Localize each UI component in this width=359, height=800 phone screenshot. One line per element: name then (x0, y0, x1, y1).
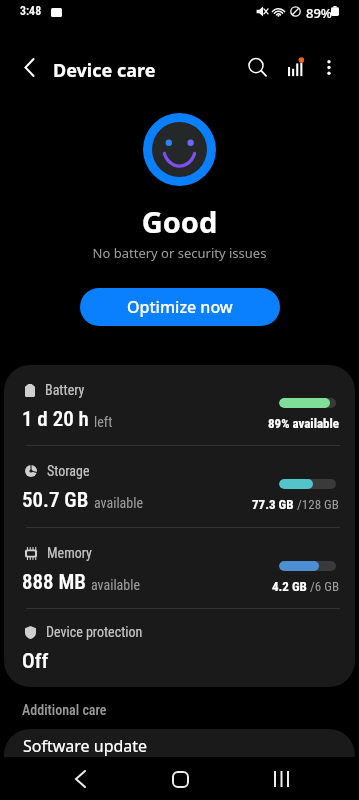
staticText: Software update (23, 735, 148, 757)
staticText: Device care (53, 58, 156, 83)
button[interactable]: Device protection (4, 609, 355, 687)
staticText: Good (0, 202, 359, 241)
staticText: 888 MB (22, 570, 86, 595)
staticText: 50.7 GB (22, 488, 89, 513)
staticText: 89% (306, 4, 332, 22)
staticText: 89% available (268, 416, 339, 431)
button[interactable]: More options (311, 49, 347, 85)
button[interactable]: Home (158, 756, 202, 800)
staticText: /6 GB (307, 579, 339, 594)
button[interactable]: Recent apps (259, 756, 303, 800)
staticText: Additional care (22, 702, 107, 718)
button[interactable]: Optimize now (80, 288, 280, 326)
staticText: 3:48 (20, 4, 42, 18)
staticText: Battery (45, 382, 85, 398)
staticText: No battery or security issues (0, 244, 359, 262)
staticText: left (94, 414, 113, 430)
button[interactable]: Memory (4, 528, 355, 608)
staticText: Optimize now (127, 296, 233, 318)
button[interactable]: Battery (4, 365, 355, 445)
staticText: available (91, 577, 141, 593)
staticText: 77.3 GB (252, 497, 294, 512)
button[interactable]: Storage (4, 446, 355, 526)
button[interactable]: Back (59, 756, 103, 800)
button[interactable]: Search (239, 49, 275, 85)
staticText: /128 GB (294, 497, 339, 512)
staticText: Off (22, 649, 49, 674)
staticText: Device protection (46, 624, 143, 640)
staticText: Memory (47, 545, 92, 561)
button[interactable]: Diagnostics (277, 49, 313, 85)
staticText: 4.2 GB (272, 579, 307, 594)
staticText: Storage (47, 463, 90, 479)
button[interactable]: Software update (4, 729, 355, 791)
button[interactable]: Navigate up (11, 49, 47, 85)
staticText: 1 d 20 h (22, 407, 89, 432)
staticText: available (94, 495, 144, 511)
